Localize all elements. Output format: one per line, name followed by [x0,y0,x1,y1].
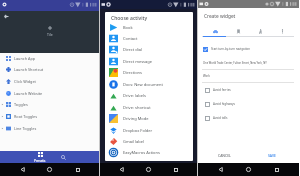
button[interactable]: Recents [170,164,181,175]
staticText: Driving Mode [123,116,149,121]
button[interactable]: Dropbox Folder [105,125,193,136]
button[interactable]: Root Toggles [0,111,99,122]
staticText: Presets [34,158,46,162]
button[interactable]: Drive: labels [105,90,193,101]
button[interactable]: Direct dial [105,44,193,55]
button[interactable]: SAVE [264,151,280,160]
staticText: Click Widget [14,79,36,84]
button[interactable]: Recents [72,164,83,175]
button[interactable]: Presets [28,151,52,163]
staticText: Directions [123,70,142,75]
staticText: One World Trade Center, Fulton Street, N… [203,61,267,65]
button[interactable]: Driving Mode [105,113,193,124]
button[interactable]: Launch Website [0,88,99,99]
button[interactable]: Start turn-by-turn navigation [203,45,251,53]
staticText: Root Toggles [14,114,38,119]
button[interactable]: Home [243,164,254,175]
button[interactable]: Contact [105,33,193,44]
button[interactable]: EasyMacros Actions [105,147,193,158]
staticText: Direct message [123,59,152,64]
staticText: Gmail label [123,139,145,144]
button[interactable]: Driving [209,25,221,37]
button[interactable]: Recents [271,164,282,175]
staticText: Choose activity [111,15,148,22]
staticText: Drive: labels [123,93,146,98]
staticText: CANCEL [218,153,231,158]
staticText: Drive: shortcut [123,105,151,110]
button[interactable]: Drive: shortcut [105,102,193,113]
button[interactable]: Walking [254,25,266,37]
button[interactable]: Transit [232,25,244,37]
staticText: Launch App [14,56,36,61]
button[interactable]: Back [17,164,28,175]
button[interactable]: Home [143,164,154,175]
staticText: Book [123,25,133,30]
button[interactable]: Book [105,22,193,33]
staticText: Launch Website [14,91,43,96]
button[interactable]: Toggles [0,99,99,110]
button[interactable]: CANCEL [214,151,235,160]
button[interactable]: Avoid highways [205,100,235,108]
button[interactable]: Line Toggles [0,123,99,134]
staticText: Contact [123,36,138,41]
button[interactable]: Gmail label [105,136,193,147]
staticText: Dropbox Folder [123,128,153,133]
staticText: Avoid highways [213,102,235,106]
staticText: Avoid ferries [213,88,231,92]
button[interactable]: Launch Shortcut [0,64,99,75]
staticText: Line Toggles [14,126,37,131]
staticText: Start turn-by-turn navigation [211,47,251,51]
button[interactable]: Back [116,164,127,175]
button[interactable]: Click Widget [0,76,99,87]
button[interactable]: Directions [105,67,193,78]
staticText: SAVE [268,153,276,158]
staticText: EasyMacros Actions [123,150,160,155]
staticText: Create widget [204,13,236,20]
staticText: Docs: New document [123,82,163,87]
staticText: Avoid tolls [213,116,228,120]
button[interactable]: Launch App [0,53,99,64]
button[interactable]: Avoid ferries [205,86,231,94]
staticText: Toggles [14,102,28,107]
button[interactable]: Back [1,11,11,21]
button[interactable]: Docs: New document [105,79,193,90]
button[interactable]: Search [53,151,73,163]
staticText: Direct dial [123,47,142,52]
button[interactable]: Avoid tolls [205,114,228,122]
button[interactable]: Home [44,164,55,175]
staticText: Launch Shortcut [14,67,44,72]
button[interactable]: Back [215,164,226,175]
button[interactable]: Cycling [276,25,288,37]
staticText: Tile [47,32,53,37]
button[interactable]: Direct message [105,56,193,67]
staticText: Work [203,74,210,78]
